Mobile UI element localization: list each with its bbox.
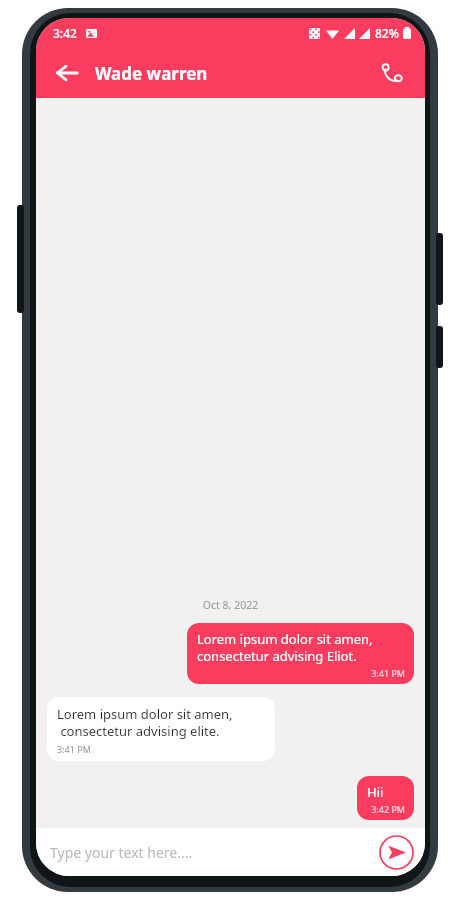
- staticText: Oct 8, 2022: [47, 598, 414, 612]
- button[interactable]: Call: [375, 55, 411, 91]
- staticText: Wade warren: [95, 62, 208, 85]
- staticText: 3:42 PM: [367, 803, 405, 815]
- staticText: Lorem ipsum dolor sit amen, consectetur …: [197, 630, 373, 665]
- staticText: 3:41 PM: [197, 667, 405, 679]
- button[interactable]: Type your text here....: [50, 843, 193, 862]
- button[interactable]: Hii: [357, 776, 414, 820]
- staticText: 3:41 PM: [57, 743, 91, 755]
- staticText: Type your text here....: [50, 843, 193, 862]
- button[interactable]: Lorem ipsum dolor sit amen, consectetur …: [187, 623, 414, 684]
- button[interactable]: Back: [49, 55, 85, 91]
- staticText: Hii: [367, 783, 384, 801]
- button[interactable]: Send: [379, 835, 414, 870]
- staticText: Lorem ipsum dolor sit amen, consectetur …: [57, 705, 233, 740]
- staticText: 82%: [375, 25, 399, 41]
- button[interactable]: Lorem ipsum dolor sit amen, consectetur …: [47, 697, 275, 761]
- staticText: 3:42: [53, 25, 77, 41]
